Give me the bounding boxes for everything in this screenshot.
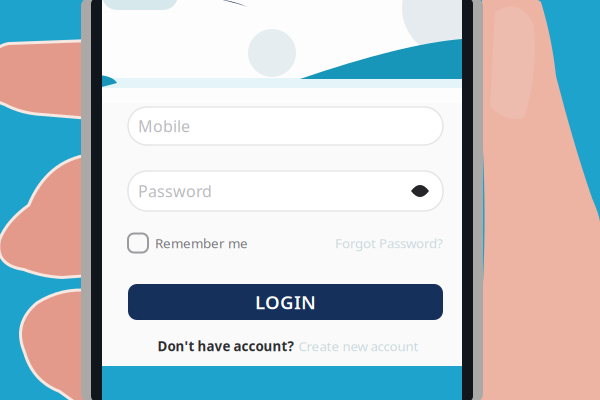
staticText: LOGIN [255, 290, 316, 314]
staticText: Create new account [298, 337, 418, 355]
staticText: Password [138, 180, 212, 202]
button[interactable]: Remember me [128, 233, 248, 252]
button[interactable]: Create new account [298, 337, 418, 355]
button[interactable]: Forgot Password? [335, 234, 443, 252]
staticText: Mobile [138, 115, 190, 137]
staticText: Forgot Password? [335, 234, 443, 252]
button[interactable]: LOGIN [128, 284, 443, 320]
staticText: Don't have account? [157, 337, 293, 355]
staticText: Remember me [155, 234, 248, 252]
